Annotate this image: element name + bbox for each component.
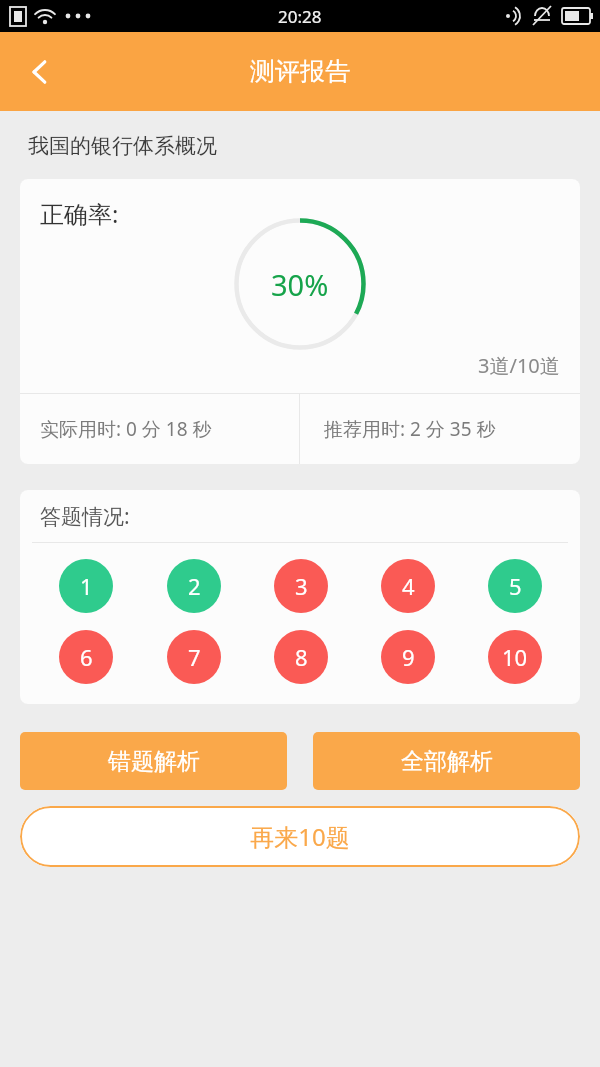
staticText: 6 (80, 642, 93, 672)
button[interactable]: 5 (488, 559, 542, 613)
button[interactable]: 7 (167, 630, 221, 684)
staticText: 错题解析 (108, 747, 200, 776)
staticText: 9 (402, 642, 415, 672)
staticText: 实际用时: 0 分 18 秒 (40, 416, 212, 442)
staticText: 2 (188, 571, 201, 601)
staticText: 20:28 (278, 5, 322, 28)
button[interactable]: 2 (167, 559, 221, 613)
staticText: 7 (188, 642, 201, 672)
staticText: 3 (295, 571, 308, 601)
staticText: 测评报告 (250, 56, 350, 87)
staticText: 1 (80, 571, 93, 601)
staticText: 再来10题 (250, 820, 350, 853)
staticText: 10 (502, 642, 528, 672)
button[interactable]: 1 (59, 559, 113, 613)
staticText: 4 (402, 571, 415, 601)
staticText: 3道/10道 (478, 352, 560, 379)
button[interactable]: 错题解析 (20, 732, 287, 790)
button[interactable]: 3 (274, 559, 328, 613)
staticText: 推荐用时: 2 分 35 秒 (324, 416, 496, 442)
staticText: 5 (509, 571, 522, 601)
button[interactable]: 全部解析 (313, 732, 580, 790)
button[interactable]: 4 (381, 559, 435, 613)
button[interactable]: 10 (488, 630, 542, 684)
button[interactable]: 6 (59, 630, 113, 684)
button[interactable]: 8 (274, 630, 328, 684)
staticText: 我国的银行体系概况 (28, 133, 217, 159)
staticText: 正确率: (40, 197, 119, 230)
staticText: 全部解析 (401, 747, 493, 776)
button[interactable]: Back (8, 40, 72, 104)
staticText: 8 (295, 642, 308, 672)
button[interactable]: 再来10题 (20, 806, 580, 867)
staticText: 30% (271, 265, 329, 304)
staticText: 答题情况: (40, 502, 130, 531)
button[interactable]: 9 (381, 630, 435, 684)
